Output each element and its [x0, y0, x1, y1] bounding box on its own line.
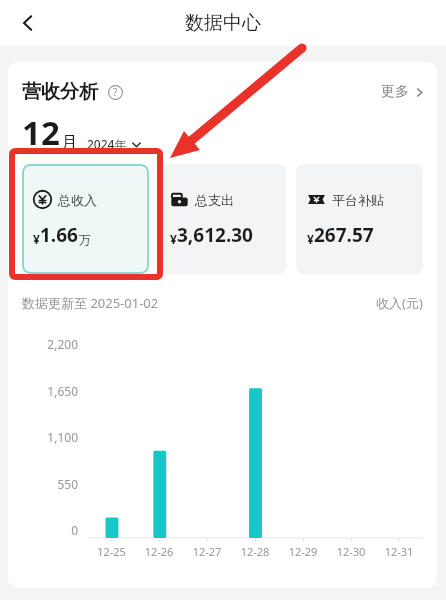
staticText: 12	[22, 110, 60, 155]
staticText: 12-27	[183, 544, 231, 559]
staticText: 数据更新至 2025-01-02	[22, 294, 159, 312]
staticText: 1.66	[40, 222, 78, 248]
button[interactable]: 平台补贴	[296, 164, 423, 274]
staticText: 月	[61, 132, 78, 153]
staticText: ¥	[170, 231, 177, 247]
staticText: 12-25	[88, 544, 135, 559]
button[interactable]: 总收入	[22, 164, 149, 274]
button[interactable]: 总支出	[159, 164, 286, 274]
staticText: 550	[20, 476, 78, 492]
staticText: 1,650	[20, 383, 78, 399]
staticText: ¥	[307, 231, 314, 247]
staticText: 总收入	[58, 192, 97, 208]
staticText: 12-26	[135, 544, 183, 559]
staticText: 12-28	[231, 544, 279, 559]
staticText: ?	[113, 85, 118, 99]
staticText: 数据中心	[185, 11, 261, 35]
staticText: 12-31	[375, 544, 423, 559]
staticText: 267.57	[314, 222, 374, 248]
staticText: ¥	[33, 231, 40, 247]
staticText: 2,200	[20, 336, 78, 352]
staticText: 更多	[381, 83, 409, 101]
staticText: 12-30	[327, 544, 375, 559]
staticText: 3,612.30	[177, 222, 253, 248]
staticText: 1,100	[20, 429, 78, 445]
button[interactable]: 12	[22, 110, 142, 155]
staticText: 12-29	[279, 544, 327, 559]
staticText: 2024年	[87, 136, 127, 152]
button[interactable]: Back	[8, 3, 48, 43]
staticText: 0	[20, 522, 78, 538]
staticText: 总支出	[195, 192, 234, 208]
button[interactable]: Help	[105, 82, 125, 102]
staticText: 收入(元)	[376, 294, 423, 312]
button[interactable]: 更多	[381, 83, 425, 101]
staticText: 平台补贴	[332, 192, 384, 208]
staticText: 营收分析	[22, 80, 98, 104]
staticText: 万	[79, 232, 91, 247]
